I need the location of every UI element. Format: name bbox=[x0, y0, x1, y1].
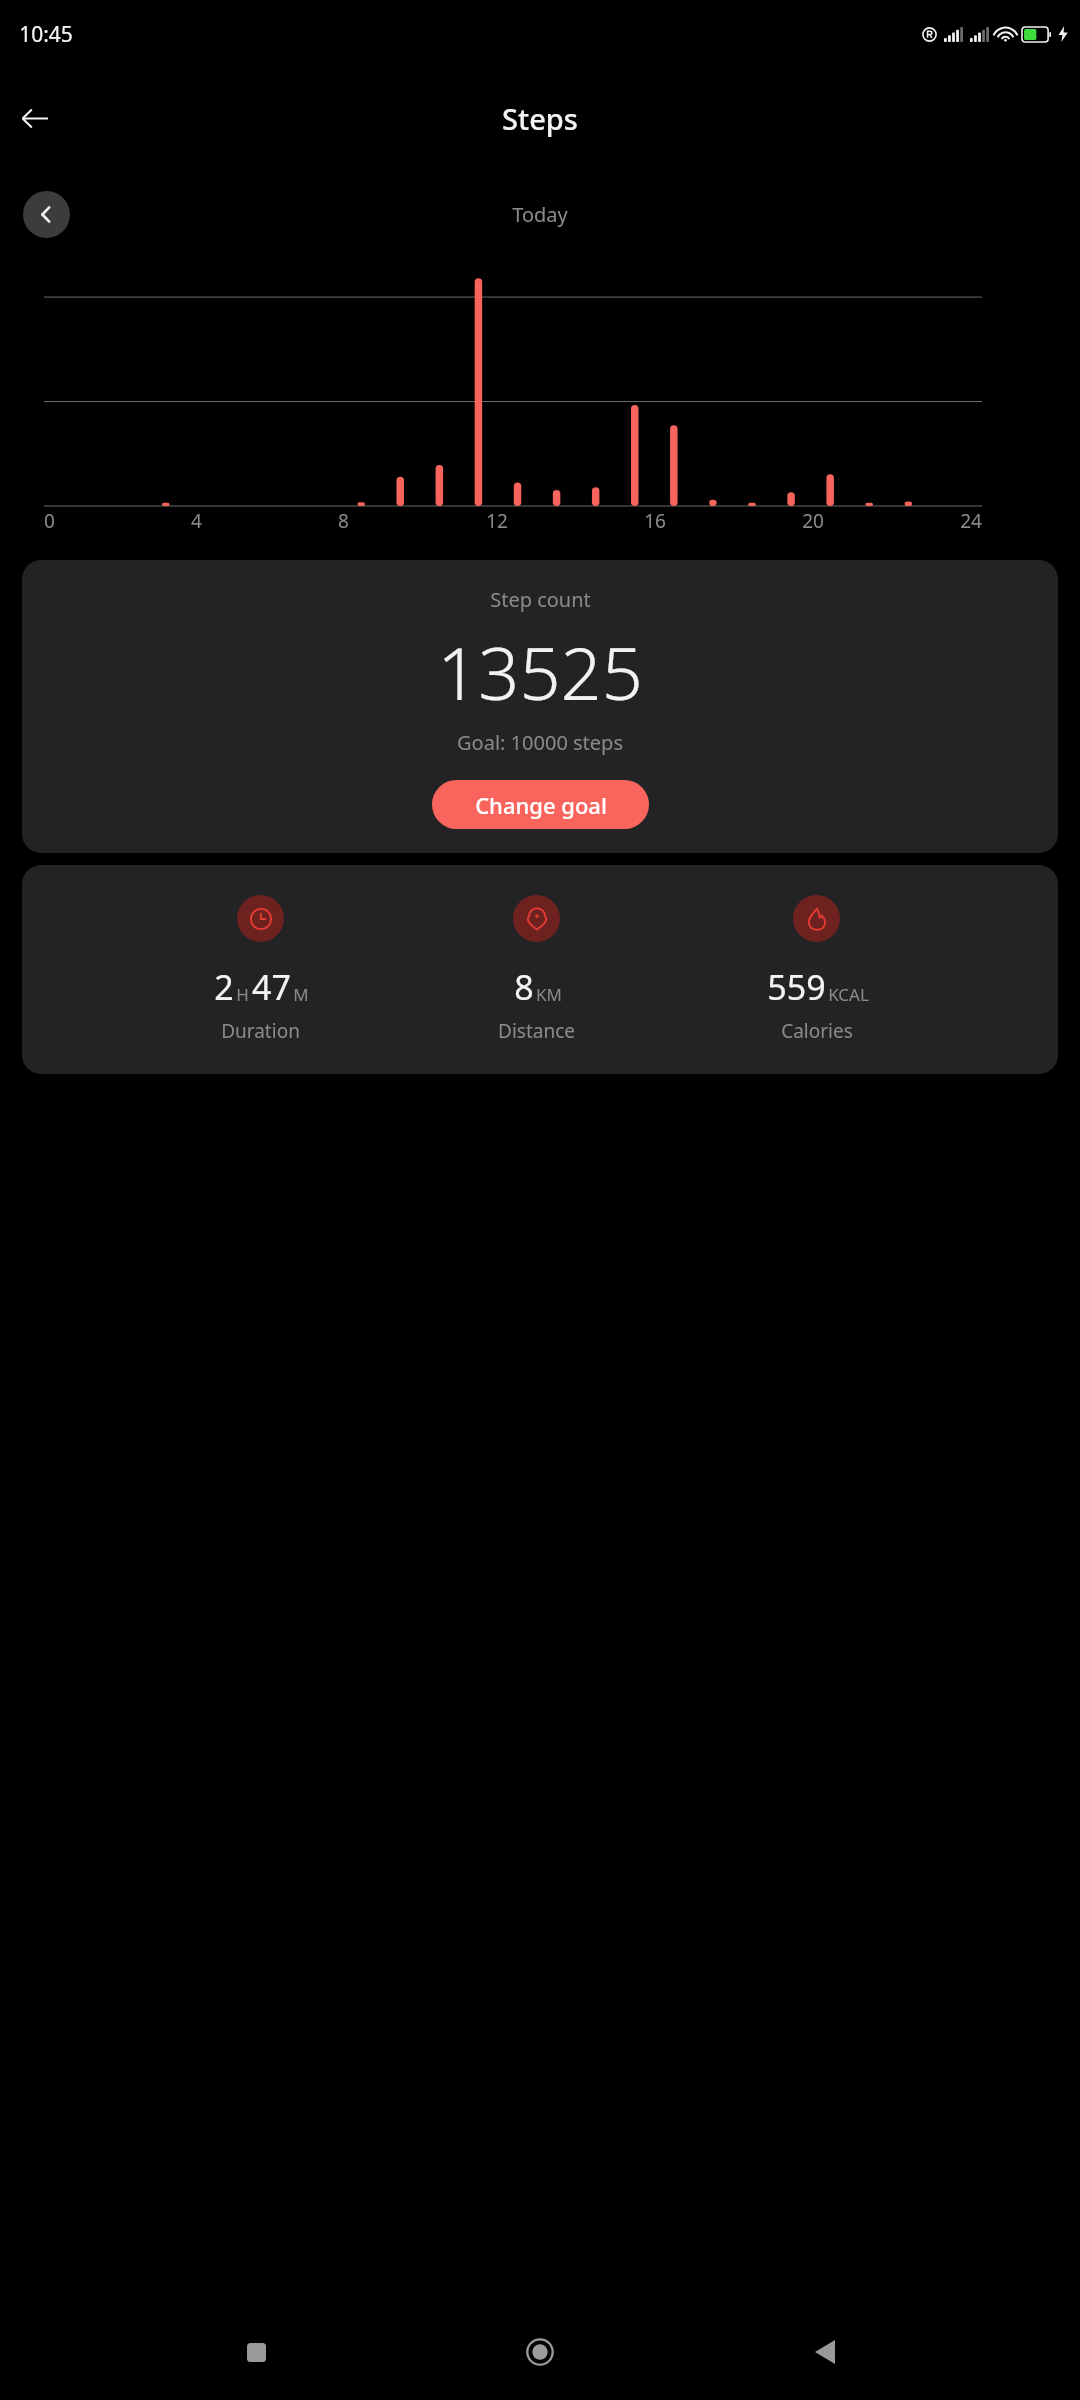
button[interactable]: Step count bbox=[22, 560, 1058, 853]
button[interactable]: 2 bbox=[22, 865, 1058, 1074]
staticText: 10:45 bbox=[19, 20, 73, 49]
staticText: 12 bbox=[486, 508, 508, 534]
staticText: 16 bbox=[644, 508, 666, 534]
staticText: Distance bbox=[498, 1018, 575, 1044]
staticText: 8 bbox=[338, 508, 349, 534]
button[interactable]: Recent apps bbox=[227, 2323, 285, 2381]
staticText: Today bbox=[512, 201, 568, 228]
staticText: KM bbox=[536, 983, 562, 1006]
staticText: KCAL bbox=[828, 983, 869, 1006]
staticText: Step count bbox=[490, 586, 591, 613]
button[interactable]: Change goal bbox=[432, 780, 649, 829]
staticText: 13525 bbox=[437, 623, 643, 721]
staticText: Duration bbox=[221, 1018, 300, 1044]
staticText: Goal: 10000 steps bbox=[457, 729, 623, 756]
staticText: 20 bbox=[802, 508, 824, 534]
staticText: 0 bbox=[44, 508, 55, 534]
staticText: H bbox=[236, 983, 249, 1006]
button[interactable]: Previous day bbox=[23, 191, 70, 238]
button[interactable]: Back bbox=[796, 2323, 854, 2381]
staticText: 47 bbox=[252, 964, 291, 1010]
staticText: M bbox=[293, 983, 309, 1006]
button[interactable]: Back bbox=[6, 90, 62, 146]
staticText: Steps bbox=[502, 99, 578, 138]
staticText: 2 bbox=[214, 964, 234, 1010]
staticText: 8 bbox=[514, 964, 534, 1010]
staticText: 4 bbox=[191, 508, 202, 534]
staticText: 559 bbox=[767, 964, 826, 1010]
staticText: Change goal bbox=[475, 790, 607, 820]
staticText: 24 bbox=[960, 508, 982, 534]
button[interactable]: Home bbox=[511, 2323, 569, 2381]
staticText: Calories bbox=[781, 1018, 853, 1044]
